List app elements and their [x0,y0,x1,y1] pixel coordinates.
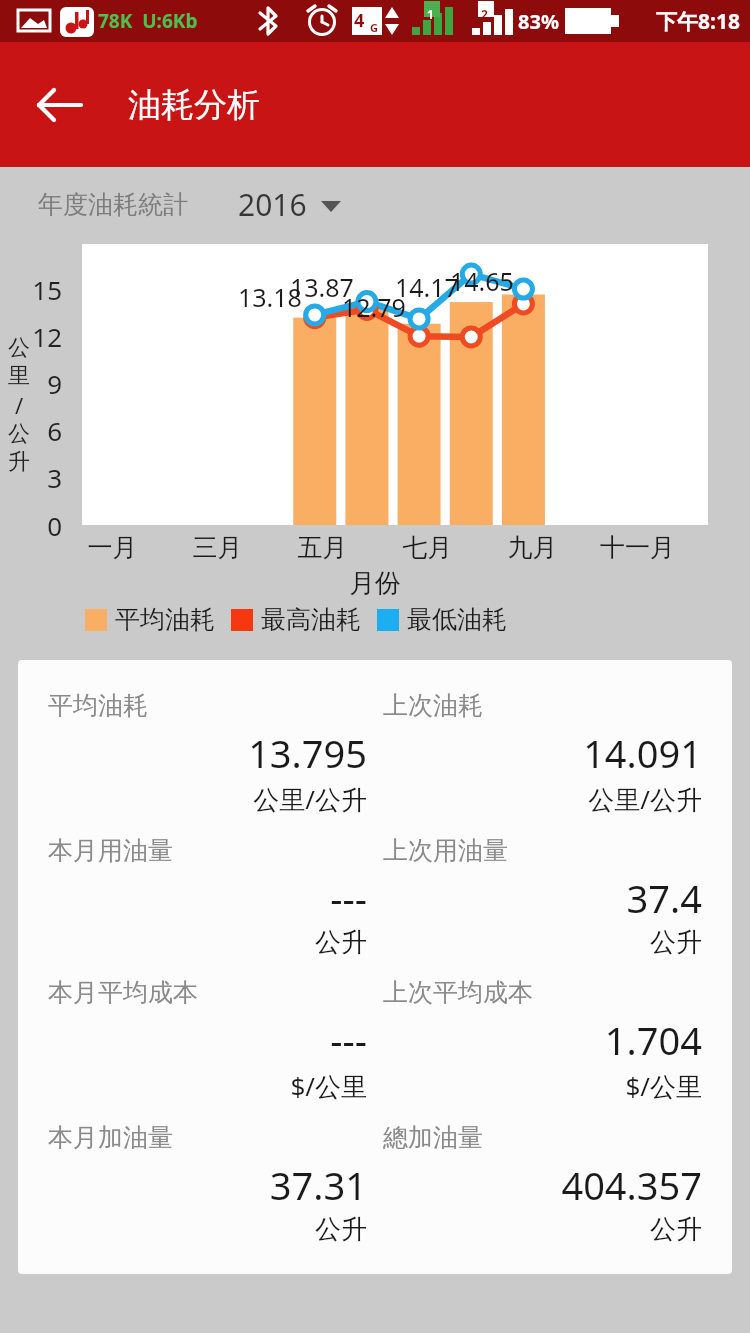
staticText: 3 [0,460,62,495]
staticText: 83% [518,8,559,35]
staticText: 十一月 [585,532,690,563]
staticText: 上次用油量 [383,835,508,866]
staticText: 4 [354,8,365,33]
staticText: 本月用油量 [48,835,173,866]
staticText: 2016 [238,184,307,225]
staticText: 最高油耗 [261,604,361,635]
staticText: 最低油耗 [407,604,507,635]
staticText: 1.704 [383,1014,702,1066]
staticText: 一月 [60,532,165,563]
staticText: 公里/公升 [48,781,367,817]
staticText: / [15,390,24,420]
staticText: 78K U:6Kb [98,8,198,34]
staticText: 1 [427,6,434,22]
button[interactable]: 本月用油量 [48,835,367,977]
staticText: 公升 [48,926,367,959]
staticText: 公升 [48,1213,367,1246]
staticText: 年度油耗統計 [38,189,188,220]
staticText: 15 [0,272,62,307]
staticText: $/公里 [383,1068,702,1104]
staticText: 本月加油量 [48,1122,173,1153]
staticText: 上次平均成本 [383,977,533,1008]
staticText: 0 [0,508,62,543]
staticText: 五月 [270,532,375,563]
staticText: 公升 [383,926,702,959]
staticText: $/公里 [48,1068,367,1104]
staticText: --- [48,872,367,924]
staticText: 七月 [375,532,480,563]
staticText: 14.17 [395,270,459,304]
staticText: 平均油耗 [48,690,148,721]
staticText: 404.357 [383,1159,702,1211]
staticText: 平均油耗 [115,604,215,635]
button[interactable]: 上次油耗 [383,690,702,835]
button[interactable]: 上次平均成本 [383,977,702,1122]
staticText: 13.18 [238,280,302,314]
button[interactable]: 本月平均成本 [48,977,367,1122]
staticText: 下午8:18 [656,7,740,36]
button[interactable]: 本月加油量 [48,1122,367,1264]
staticText: 本月平均成本 [48,977,198,1008]
staticText: G [370,20,378,35]
button[interactable]: Back [28,73,92,137]
staticText: 13.87 [290,270,354,304]
button[interactable]: 平均油耗 [48,690,367,835]
staticText: 油耗分析 [128,84,260,126]
staticText: 14.65 [450,264,514,298]
staticText: 公 [8,420,30,448]
staticText: 公升 [383,1213,702,1246]
staticText: 九月 [480,532,585,563]
staticText: 37.31 [48,1159,367,1211]
staticText: 9 [0,366,62,401]
button[interactable]: 2016 [238,184,341,225]
staticText: 公里/公升 [383,781,702,817]
staticText: 里 [8,362,30,390]
staticText: 37.4 [383,872,702,924]
staticText: 6 [0,413,62,448]
staticText: 升 [8,448,30,476]
staticText: 2 [481,6,488,22]
staticText: 上次油耗 [383,690,483,721]
staticText: 12.79 [342,290,406,324]
staticText: 總加油量 [383,1122,483,1153]
button[interactable]: 上次用油量 [383,835,702,977]
button[interactable]: 總加油量 [383,1122,702,1264]
staticText: --- [48,1014,367,1066]
staticText: 14.091 [383,727,702,779]
staticText: 公 [8,334,30,362]
staticText: 月份 [0,567,750,600]
staticText: 12 [0,319,62,354]
staticText: 三月 [165,532,270,563]
staticText: 13.795 [48,727,367,779]
